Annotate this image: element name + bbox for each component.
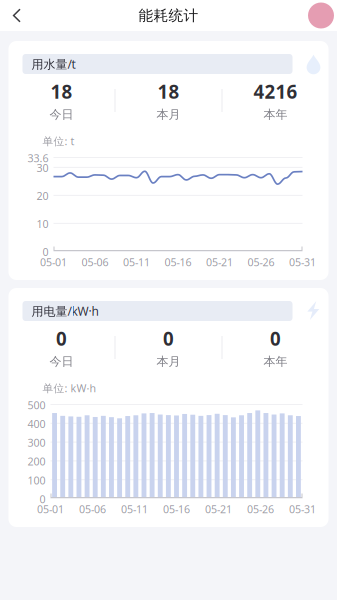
staticText: 05-31 (289, 255, 316, 269)
staticText: 300 (27, 436, 45, 450)
staticText: 本年 (263, 354, 287, 369)
button[interactable]: Back (0, 0, 34, 31)
staticText: 05-26 (247, 255, 274, 269)
staticText: 05-01 (37, 502, 64, 516)
staticText: 33.6 (27, 151, 48, 165)
staticText: 18 (50, 79, 72, 104)
staticText: 05-06 (79, 502, 106, 516)
staticText: 05-16 (164, 255, 191, 269)
staticText: 单位: kW·h (42, 381, 96, 395)
staticText: 能耗统计 (138, 6, 198, 24)
staticText: 05-21 (206, 255, 233, 269)
staticText: 0 (39, 492, 45, 506)
staticText: 200 (27, 454, 45, 469)
staticText: 0 (42, 245, 48, 259)
staticText: 本年 (263, 107, 287, 122)
staticText: 100 (27, 473, 45, 487)
staticText: 今日 (49, 107, 73, 122)
staticText: 05-26 (247, 502, 274, 516)
staticText: 18 (157, 79, 179, 104)
staticText: 05-11 (123, 255, 150, 269)
staticText: 本月 (156, 354, 180, 369)
staticText: 500 (27, 398, 45, 412)
staticText: 用水量/t (31, 56, 75, 72)
staticText: 05-16 (163, 502, 190, 516)
staticText: 05-11 (121, 502, 148, 516)
staticText: 05-21 (205, 502, 232, 516)
staticText: 05-31 (289, 502, 316, 516)
staticText: 30 (36, 161, 48, 175)
staticText: 20 (36, 189, 48, 203)
staticText: 10 (36, 217, 48, 231)
staticText: 0 (163, 326, 174, 351)
staticText: 4216 (253, 79, 297, 104)
staticText: 0 (56, 326, 67, 351)
staticText: 05-01 (40, 255, 67, 269)
staticText: 单位: t (42, 134, 74, 148)
button[interactable]: Account (308, 2, 337, 28)
staticText: 用电量/kW·h (31, 303, 98, 319)
staticText: 本月 (156, 107, 180, 122)
staticText: 0 (270, 326, 281, 351)
staticText: 400 (27, 417, 45, 431)
staticText: 今日 (49, 354, 73, 369)
staticText: 05-06 (81, 255, 108, 269)
